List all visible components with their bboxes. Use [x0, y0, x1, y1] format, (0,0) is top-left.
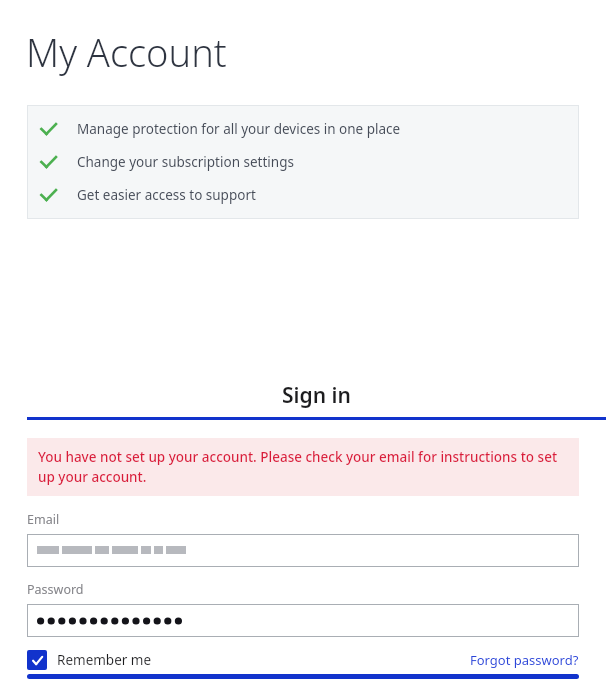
staticText: You have not set up your account. Please…: [38, 448, 568, 486]
button[interactable]: Forgot password?: [470, 651, 579, 669]
button[interactable]: [27, 534, 579, 567]
staticText: Get easier access to support: [77, 186, 256, 204]
button[interactable]: Sign in: [27, 381, 606, 420]
staticText: My Account: [26, 26, 227, 78]
staticText: Sign in: [282, 381, 351, 410]
staticText: Password: [27, 581, 84, 598]
button[interactable]: SIGN IN: [27, 674, 579, 679]
staticText: Manage protection for all your devices i…: [77, 120, 401, 138]
staticText: Forgot password?: [470, 651, 579, 669]
button[interactable]: Remember me: [27, 650, 152, 670]
staticText: Change your subscription settings: [77, 153, 294, 171]
staticText: Email: [27, 511, 60, 528]
staticText: Remember me: [57, 651, 152, 669]
button[interactable]: [27, 604, 579, 637]
